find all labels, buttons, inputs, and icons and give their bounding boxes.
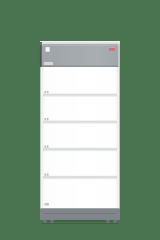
button[interactable]: Display cooler refrigerator	[0, 0, 160, 240]
